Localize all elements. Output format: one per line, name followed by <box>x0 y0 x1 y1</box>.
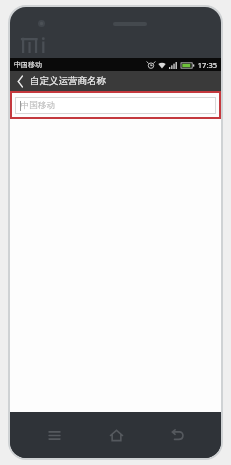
staticText: 17:35 <box>197 60 217 70</box>
staticText: 中国移动 <box>21 100 55 111</box>
button[interactable]: Back <box>160 418 194 452</box>
staticText: 中国移动 <box>14 60 42 69</box>
staticText: 自定义运营商名称 <box>30 75 106 87</box>
button[interactable]: Menu <box>37 418 71 452</box>
button[interactable]: Home <box>99 418 133 452</box>
button[interactable]: Back <box>10 71 30 91</box>
button[interactable]: 中国移动 <box>15 97 216 114</box>
